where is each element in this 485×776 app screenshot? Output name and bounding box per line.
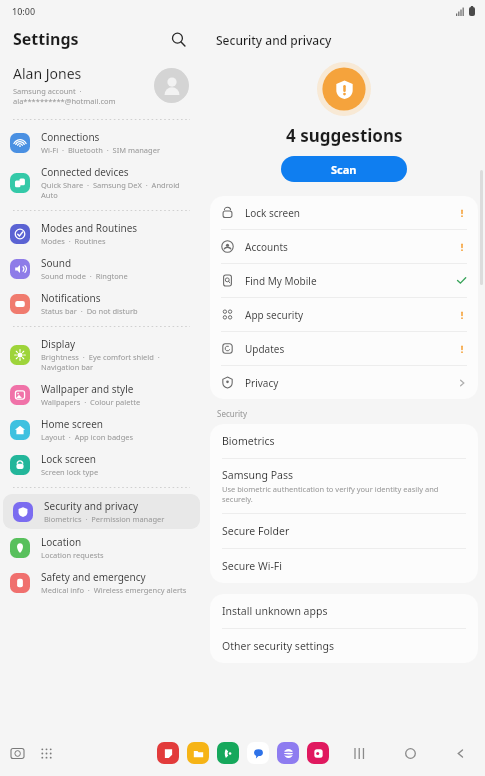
staticText: Biometrics (222, 434, 275, 448)
staticText: Safety and emergency (41, 570, 146, 584)
staticText: Updates (245, 342, 457, 356)
staticText: Connected devices (41, 165, 129, 179)
staticText: Lock screen (245, 206, 457, 220)
button[interactable]: Updates (210, 332, 478, 365)
button[interactable]: Sound (0, 251, 203, 286)
staticText: Location (41, 535, 82, 549)
staticText: Install unknown apps (222, 604, 328, 618)
staticText: Privacy (245, 376, 457, 390)
staticText: Quick Share · Samsung DeX · Android Auto (41, 180, 193, 200)
staticText: Modes · Routines (41, 236, 106, 246)
button[interactable]: Find My Mobile (210, 264, 478, 297)
staticText: Wi-Fi · Bluetooth · SIM manager (41, 145, 160, 155)
button[interactable]: Messages (247, 742, 269, 764)
button[interactable]: Secure Wi-Fi (210, 549, 478, 583)
staticText: Samsung Pass (222, 468, 293, 482)
button[interactable]: Secure Folder (210, 514, 478, 548)
button[interactable]: Wallpaper and style (0, 377, 203, 412)
staticText: Security and privacy (44, 499, 139, 513)
button[interactable]: Home (399, 742, 421, 764)
button[interactable]: Display (0, 332, 203, 377)
staticText: Connections (41, 130, 100, 144)
staticText: Lock screen (41, 452, 97, 466)
staticText: Scan (331, 162, 357, 177)
button[interactable]: Connections (0, 125, 203, 160)
button[interactable]: Home screen (0, 412, 203, 447)
button[interactable]: Search (165, 26, 191, 52)
button[interactable]: Gallery (307, 742, 329, 764)
button[interactable]: Back (449, 742, 471, 764)
staticText: Modes and Routines (41, 221, 138, 235)
staticText: Screen lock type (41, 467, 99, 477)
button[interactable]: Install unknown apps (210, 594, 478, 628)
staticText: Use biometric authentication to verify y… (222, 484, 466, 504)
staticText: 4 suggestions (286, 124, 403, 147)
staticText: Alan Jones (13, 64, 82, 83)
button[interactable]: Lock screen (210, 196, 478, 229)
button[interactable]: Modes and Routines (0, 216, 203, 251)
button[interactable]: Recent apps panel (7, 743, 27, 763)
staticText: Sound mode · Ringtone (41, 271, 128, 281)
staticText: Security (217, 408, 248, 419)
button[interactable]: Internet (277, 742, 299, 764)
staticText: Secure Folder (222, 524, 290, 538)
staticText: Home screen (41, 417, 104, 431)
staticText: Security and privacy (216, 32, 332, 48)
button[interactable]: Privacy (210, 366, 478, 399)
staticText: Wallpaper and style (41, 382, 134, 396)
staticText: 10:00 (12, 5, 36, 17)
button[interactable]: My Files (187, 742, 209, 764)
staticText: Samsung account · (13, 86, 82, 96)
staticText: Location requests (41, 550, 104, 560)
button[interactable]: Biometrics (210, 424, 478, 458)
button[interactable]: Accounts (210, 230, 478, 263)
staticText: Biometrics · Permission manager (44, 514, 165, 524)
button[interactable]: Alan Jones (0, 56, 203, 114)
button[interactable]: Recents (349, 742, 371, 764)
staticText: App security (245, 308, 457, 322)
staticText: Wallpapers · Colour palette (41, 397, 141, 407)
button[interactable]: Notifications (0, 286, 203, 321)
staticText: Accounts (245, 240, 457, 254)
staticText: Medical info · Wireless emergency alerts (41, 585, 187, 595)
staticText: Secure Wi-Fi (222, 559, 283, 573)
button[interactable]: Connected devices (0, 160, 203, 205)
staticText: Settings (13, 28, 79, 50)
staticText: Sound (41, 256, 72, 270)
button[interactable]: Samsung Notes (157, 742, 179, 764)
button[interactable]: All apps (36, 743, 56, 763)
staticText: Brightness · Eye comfort shield · Naviga… (41, 352, 193, 372)
staticText: Status bar · Do not disturb (41, 306, 138, 316)
staticText: ala**********@hotmail.com (13, 96, 116, 106)
button[interactable]: Lock screen (0, 447, 203, 482)
button[interactable]: Safety and emergency (0, 565, 203, 600)
button[interactable]: Other security settings (210, 629, 478, 663)
button[interactable]: Location (0, 530, 203, 565)
button[interactable]: Security and privacy (3, 494, 200, 529)
button[interactable]: Scan (281, 156, 407, 182)
staticText: Find My Mobile (245, 274, 456, 288)
button[interactable]: Phone (217, 742, 239, 764)
button[interactable]: App security (210, 298, 478, 331)
button[interactable]: Samsung Pass (210, 459, 478, 513)
staticText: Display (41, 337, 76, 351)
staticText: Layout · App icon badges (41, 432, 134, 442)
staticText: Notifications (41, 291, 101, 305)
staticText: Other security settings (222, 639, 335, 653)
